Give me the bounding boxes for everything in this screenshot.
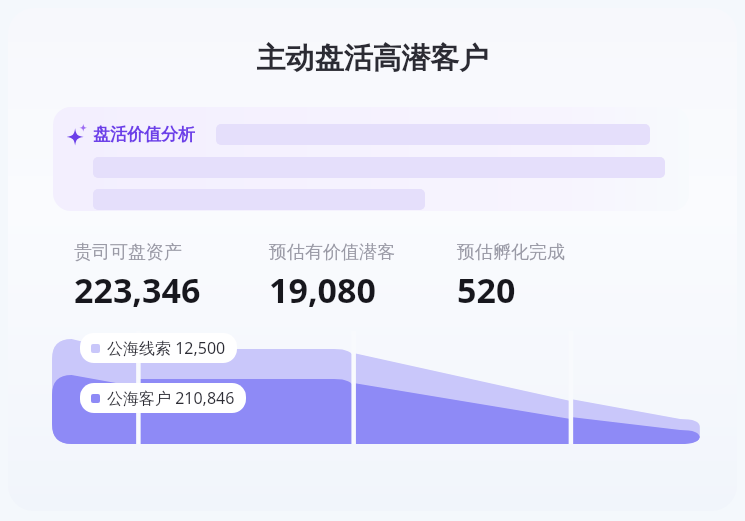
other: AI 盘活价值分析 xyxy=(66,122,90,146)
staticText: 公海客户 210,846 xyxy=(107,387,235,409)
staticText: 223,346 xyxy=(74,267,201,313)
staticText: 贵司可盘资产 xyxy=(74,241,182,264)
button[interactable]: 预估有价值潜客 xyxy=(269,241,395,313)
staticText: 主动盘活高潜客户 xyxy=(8,40,737,77)
staticText: 预估有价值潜客 xyxy=(269,241,395,264)
button[interactable]: AI 盘活价值分析 xyxy=(53,107,689,211)
staticText: 520 xyxy=(457,267,516,313)
staticText: 19,080 xyxy=(269,267,376,313)
staticText: 公海线索 12,500 xyxy=(107,337,226,359)
button[interactable]: 预估孵化完成 xyxy=(457,241,565,313)
button[interactable]: 贵司可盘资产 xyxy=(74,241,201,313)
button[interactable]: 公海客户 210,846 xyxy=(80,383,246,413)
staticText: 盘活价值分析 xyxy=(93,124,195,145)
staticText: 预估孵化完成 xyxy=(457,241,565,264)
button[interactable]: 公海线索 12,500 xyxy=(80,333,237,363)
